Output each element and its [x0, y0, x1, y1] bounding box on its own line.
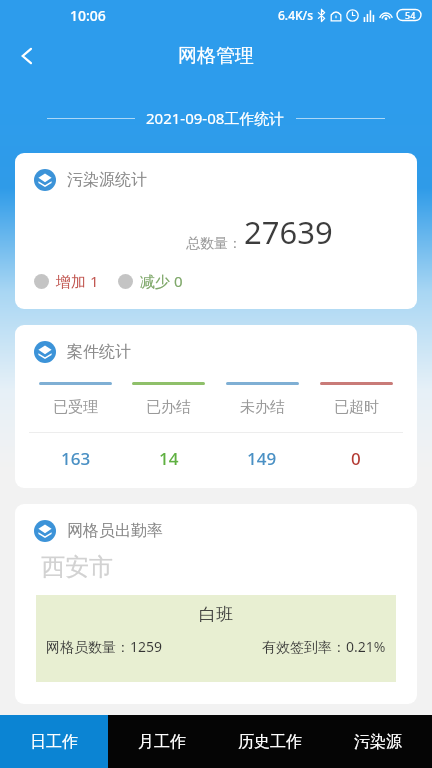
staticText: 14: [159, 447, 179, 470]
button[interactable]: 网格员出勤率: [15, 504, 417, 704]
staticText: 有效签到率：0.21%: [262, 637, 386, 656]
staticText: 增加 1: [56, 271, 99, 291]
button[interactable]: 月工作: [108, 715, 216, 768]
staticText: 西安市: [41, 552, 113, 582]
button[interactable]: 案件统计: [15, 325, 417, 488]
button[interactable]: 日工作: [0, 715, 108, 768]
staticText: 已超时: [334, 398, 379, 417]
staticText: 减少 0: [140, 271, 183, 291]
staticText: 网格管理: [178, 44, 254, 68]
staticText: 149: [247, 447, 277, 470]
staticText: 2021-09-08工作统计: [146, 108, 285, 128]
staticText: 163: [61, 447, 91, 470]
staticText: 污染源: [354, 732, 402, 752]
staticText: 日工作: [30, 732, 78, 752]
button[interactable]: Back: [6, 35, 48, 77]
staticText: 总数量：: [186, 235, 242, 253]
staticText: 未办结: [240, 398, 285, 417]
button[interactable]: 污染源统计: [15, 153, 417, 309]
staticText: 案件统计: [67, 342, 131, 362]
staticText: 历史工作: [238, 732, 302, 752]
button[interactable]: 历史工作: [216, 715, 324, 768]
staticText: 0: [351, 447, 361, 470]
staticText: 网格员数量：1259: [46, 637, 163, 656]
staticText: 已受理: [53, 398, 98, 417]
staticText: 27639: [244, 211, 333, 253]
staticText: 54: [405, 9, 416, 21]
staticText: 白班: [199, 604, 233, 625]
staticText: 已办结: [146, 398, 191, 417]
staticText: 月工作: [138, 732, 186, 752]
staticText: 6.4K/s: [278, 7, 314, 23]
button[interactable]: 污染源: [324, 715, 432, 768]
staticText: 10:06: [70, 6, 106, 25]
staticText: 网格员出勤率: [67, 521, 163, 541]
staticText: 污染源统计: [67, 170, 147, 190]
